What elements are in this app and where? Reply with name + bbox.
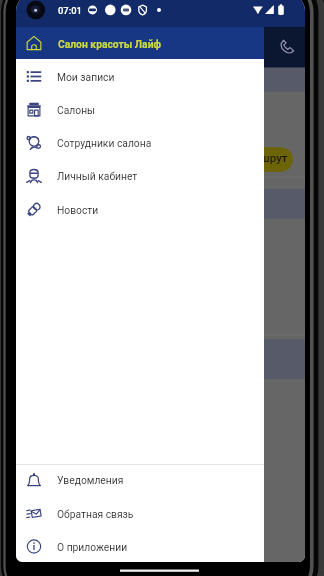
button[interactable]: О приложении xyxy=(16,530,264,562)
staticText: Сотрудники салона xyxy=(57,137,152,149)
staticText: Мои записи xyxy=(57,71,115,83)
staticText: Личный кабинет xyxy=(57,170,138,182)
button[interactable]: Сотрудники салона xyxy=(16,126,264,159)
button[interactable]: Уведомления xyxy=(16,463,264,496)
staticText: Салоны xyxy=(57,104,96,116)
button[interactable]: Салоны xyxy=(16,93,264,126)
staticText: О приложении xyxy=(57,541,128,553)
button[interactable]: Новости xyxy=(16,193,264,226)
button[interactable]: Обратная связь xyxy=(16,497,264,530)
button[interactable]: Личный кабинет xyxy=(16,159,264,192)
staticText: 07:01 xyxy=(58,5,82,16)
staticText: Построить маршрут xyxy=(178,151,288,164)
staticText: Салон красоты Лайф xyxy=(58,38,162,50)
staticText: Обратная связь xyxy=(57,508,134,520)
staticText: Новости xyxy=(57,204,99,216)
staticText: Уведомления xyxy=(57,474,124,486)
button[interactable]: Мои записи xyxy=(16,60,264,93)
button[interactable]: Салон красоты Лайф xyxy=(16,27,264,59)
